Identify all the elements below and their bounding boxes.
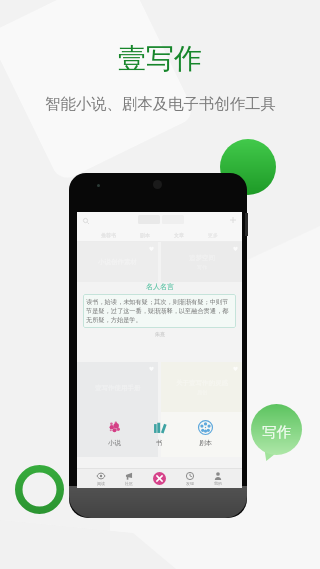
- staticText: 我的: [214, 481, 222, 486]
- staticText: 阅读: [97, 481, 105, 486]
- staticText: 小说: [108, 439, 121, 447]
- staticText: 智能小说、剧本及电子书创作工具: [45, 94, 276, 113]
- button[interactable]: 发现: [186, 472, 194, 486]
- button[interactable]: 我的: [214, 472, 222, 486]
- staticText: 名人名言: [146, 282, 174, 291]
- staticText: 推荐书: [101, 232, 116, 238]
- staticText: 读书，始读，未知有疑；其次，则渐渐有疑；中则节节是疑，过了这一番，疑渐渐释，以至…: [86, 298, 233, 324]
- staticText: 文章: [174, 232, 184, 238]
- button[interactable]: 写作: [251, 404, 302, 461]
- staticText: 剧本: [199, 439, 212, 447]
- staticText: 更多: [208, 232, 218, 238]
- button[interactable]: 剧本: [197, 419, 214, 447]
- staticText: 写作: [262, 423, 291, 441]
- staticText: 书: [156, 439, 163, 447]
- staticText: 壹写作: [118, 41, 202, 76]
- staticText: 朱熹: [155, 331, 165, 337]
- staticText: 社区: [125, 481, 133, 486]
- button[interactable]: 社区: [125, 472, 133, 486]
- staticText: 剧本: [140, 232, 150, 238]
- button[interactable]: 小说: [106, 419, 123, 447]
- button[interactable]: 新建: [153, 472, 166, 485]
- button[interactable]: 阅读: [97, 472, 105, 486]
- staticText: 发现: [186, 481, 194, 486]
- button[interactable]: 书: [151, 419, 168, 447]
